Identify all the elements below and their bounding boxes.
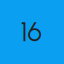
staticText: 16: [20, 16, 41, 48]
